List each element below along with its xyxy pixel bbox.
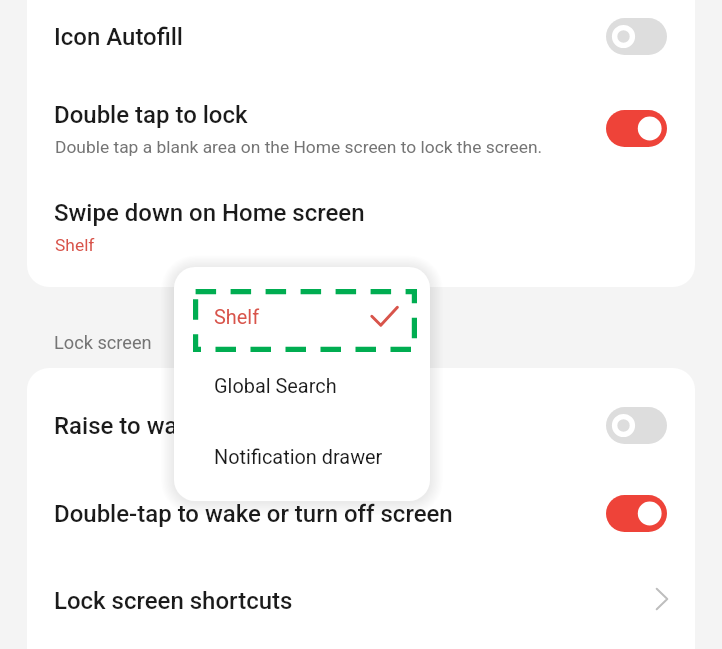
- button[interactable]: Switch on: [606, 495, 667, 532]
- staticText: Lock screen: [54, 332, 152, 353]
- staticText: Shelf: [214, 306, 260, 329]
- button[interactable]: Notification drawer: [174, 423, 430, 491]
- button[interactable]: Lock screen shortcuts: [27, 557, 695, 643]
- button[interactable]: Switch off: [606, 407, 667, 444]
- button[interactable]: Shelf: [174, 283, 430, 351]
- staticText: Icon Autofill: [54, 23, 183, 51]
- staticText: Shelf: [55, 235, 95, 255]
- button[interactable]: Switch off: [606, 18, 667, 55]
- button[interactable]: Double tap to lock: [27, 83, 695, 173]
- staticText: Double-tap to wake or turn off screen: [54, 500, 453, 528]
- staticText: Notification drawer: [214, 446, 383, 469]
- other: Open Lock screen shortcuts: [642, 580, 682, 620]
- staticText: Raise to wake: [54, 412, 203, 440]
- button[interactable]: Double-tap to wake or turn off screen: [27, 470, 695, 556]
- staticText: Double tap to lock: [54, 101, 248, 129]
- button[interactable]: Swipe down on Home screen: [27, 181, 695, 271]
- button[interactable]: Global Search: [174, 352, 430, 420]
- staticText: Double tap a blank area on the Home scre…: [55, 137, 543, 157]
- staticText: Swipe down on Home screen: [54, 199, 365, 227]
- button[interactable]: Raise to wake: [27, 382, 695, 468]
- button[interactable]: Icon Autofill: [27, 0, 695, 74]
- staticText: Global Search: [214, 375, 337, 398]
- staticText: Lock screen shortcuts: [54, 587, 293, 615]
- button[interactable]: Switch on: [606, 110, 667, 147]
